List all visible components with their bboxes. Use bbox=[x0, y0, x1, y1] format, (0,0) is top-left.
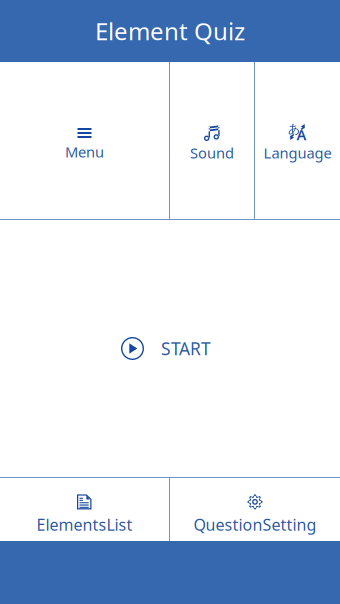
button[interactable]: ElementsList bbox=[0, 478, 169, 541]
staticText: あ bbox=[288, 122, 300, 136]
staticText: START bbox=[161, 337, 211, 360]
button[interactable]: START bbox=[111, 327, 221, 370]
staticText: A bbox=[296, 125, 306, 144]
staticText: Element Quiz bbox=[95, 15, 245, 47]
button[interactable]: QuestionSetting bbox=[170, 478, 340, 541]
button[interactable]: あ bbox=[255, 62, 340, 219]
button[interactable]: Menu bbox=[0, 62, 169, 219]
staticText: QuestionSetting bbox=[193, 514, 316, 535]
staticText: Menu bbox=[65, 142, 104, 161]
staticText: Sound bbox=[190, 143, 234, 162]
staticText: Language bbox=[263, 143, 331, 162]
button[interactable]: Sound bbox=[170, 62, 254, 219]
staticText: ElementsList bbox=[36, 514, 132, 535]
